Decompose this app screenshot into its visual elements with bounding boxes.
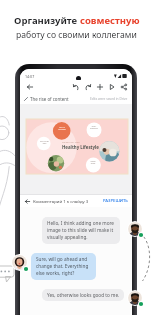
staticText: РАЗРЕШИТЬ bbox=[103, 198, 128, 204]
button[interactable]: Back to comments bbox=[23, 197, 32, 206]
button[interactable]: Yes, otherwise looks good to me. bbox=[42, 289, 124, 301]
button[interactable]: РАЗРЕШИТЬ bbox=[102, 197, 129, 205]
button[interactable]: Redo bbox=[82, 81, 94, 93]
staticText: работу со своими коллегами bbox=[16, 29, 137, 41]
button[interactable]: Present bbox=[106, 81, 118, 93]
button[interactable]: Undo bbox=[70, 81, 82, 93]
staticText: Edits were saved in Drive bbox=[90, 97, 128, 101]
staticText: The rise of content bbox=[30, 96, 69, 102]
staticText: Yes, otherwise looks good to me. bbox=[47, 292, 120, 298]
button[interactable]: Back bbox=[24, 81, 35, 92]
button[interactable]: Add slide bbox=[94, 81, 106, 93]
button[interactable]: Share bbox=[118, 81, 130, 93]
staticText: GOOD SLEEP bbox=[90, 160, 96, 164]
staticText: Организуйте bbox=[14, 14, 80, 27]
staticText: Комментарий 1 к слайду 3 bbox=[33, 198, 89, 204]
staticText: совместную bbox=[80, 14, 140, 27]
staticText: L I F E S T Y L E T I P S bbox=[62, 141, 80, 143]
button[interactable]: Sure, will go ahead and change that. Eve… bbox=[31, 253, 96, 280]
staticText: 14:07 bbox=[25, 74, 35, 79]
staticText: Hello, I think adding one more image to … bbox=[47, 220, 116, 241]
staticText: DAILY EXERCISE bbox=[90, 125, 98, 129]
staticText: WHY IT MATTERS bbox=[58, 126, 66, 130]
button[interactable]: Hello, I think adding one more image to … bbox=[42, 217, 120, 244]
staticText: BALANCED DIET bbox=[40, 140, 49, 144]
staticText: Sure, will go ahead and change that. Eve… bbox=[36, 256, 92, 277]
staticText: Healthy Lifestyle bbox=[62, 144, 99, 150]
